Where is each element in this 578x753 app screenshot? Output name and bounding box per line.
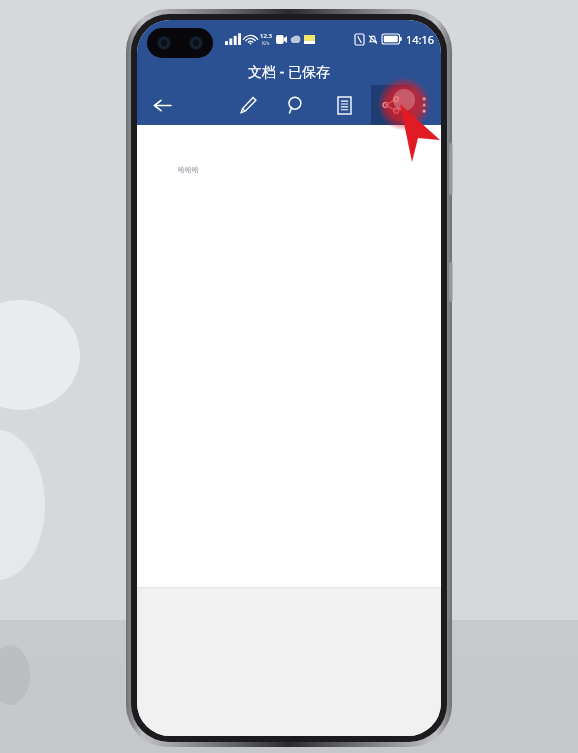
button[interactable]: Reading view: [325, 86, 363, 124]
button[interactable]: Search: [277, 86, 315, 124]
staticText: 12.3: [260, 32, 272, 40]
staticText: 14:16: [406, 32, 435, 47]
button[interactable]: Share: [371, 85, 411, 125]
button[interactable]: Edit: [229, 86, 267, 124]
staticText: 哈哈哈: [178, 165, 199, 174]
staticText: K/s: [262, 40, 270, 47]
staticText: 文档 - 已保存: [248, 62, 330, 81]
button[interactable]: More options: [411, 86, 437, 124]
button[interactable]: Back: [143, 86, 181, 124]
